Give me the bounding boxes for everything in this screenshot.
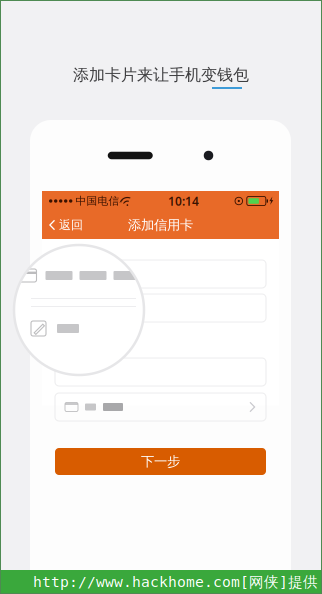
staticText: 返回 — [59, 218, 83, 232]
staticText: 10:14 — [168, 193, 199, 209]
staticText: http://www.hackhome.com[网侠]提供 — [33, 573, 318, 591]
staticText: 下一步 — [141, 453, 180, 470]
button[interactable] — [55, 393, 266, 421]
button[interactable]: 返回 — [42, 211, 90, 239]
button[interactable]: 下一步 — [55, 448, 266, 475]
staticText: 中国电信 — [75, 194, 119, 207]
staticText: 添加信用卡 — [128, 217, 193, 233]
staticText: 添加卡片来让手机变钱包 — [73, 65, 249, 85]
